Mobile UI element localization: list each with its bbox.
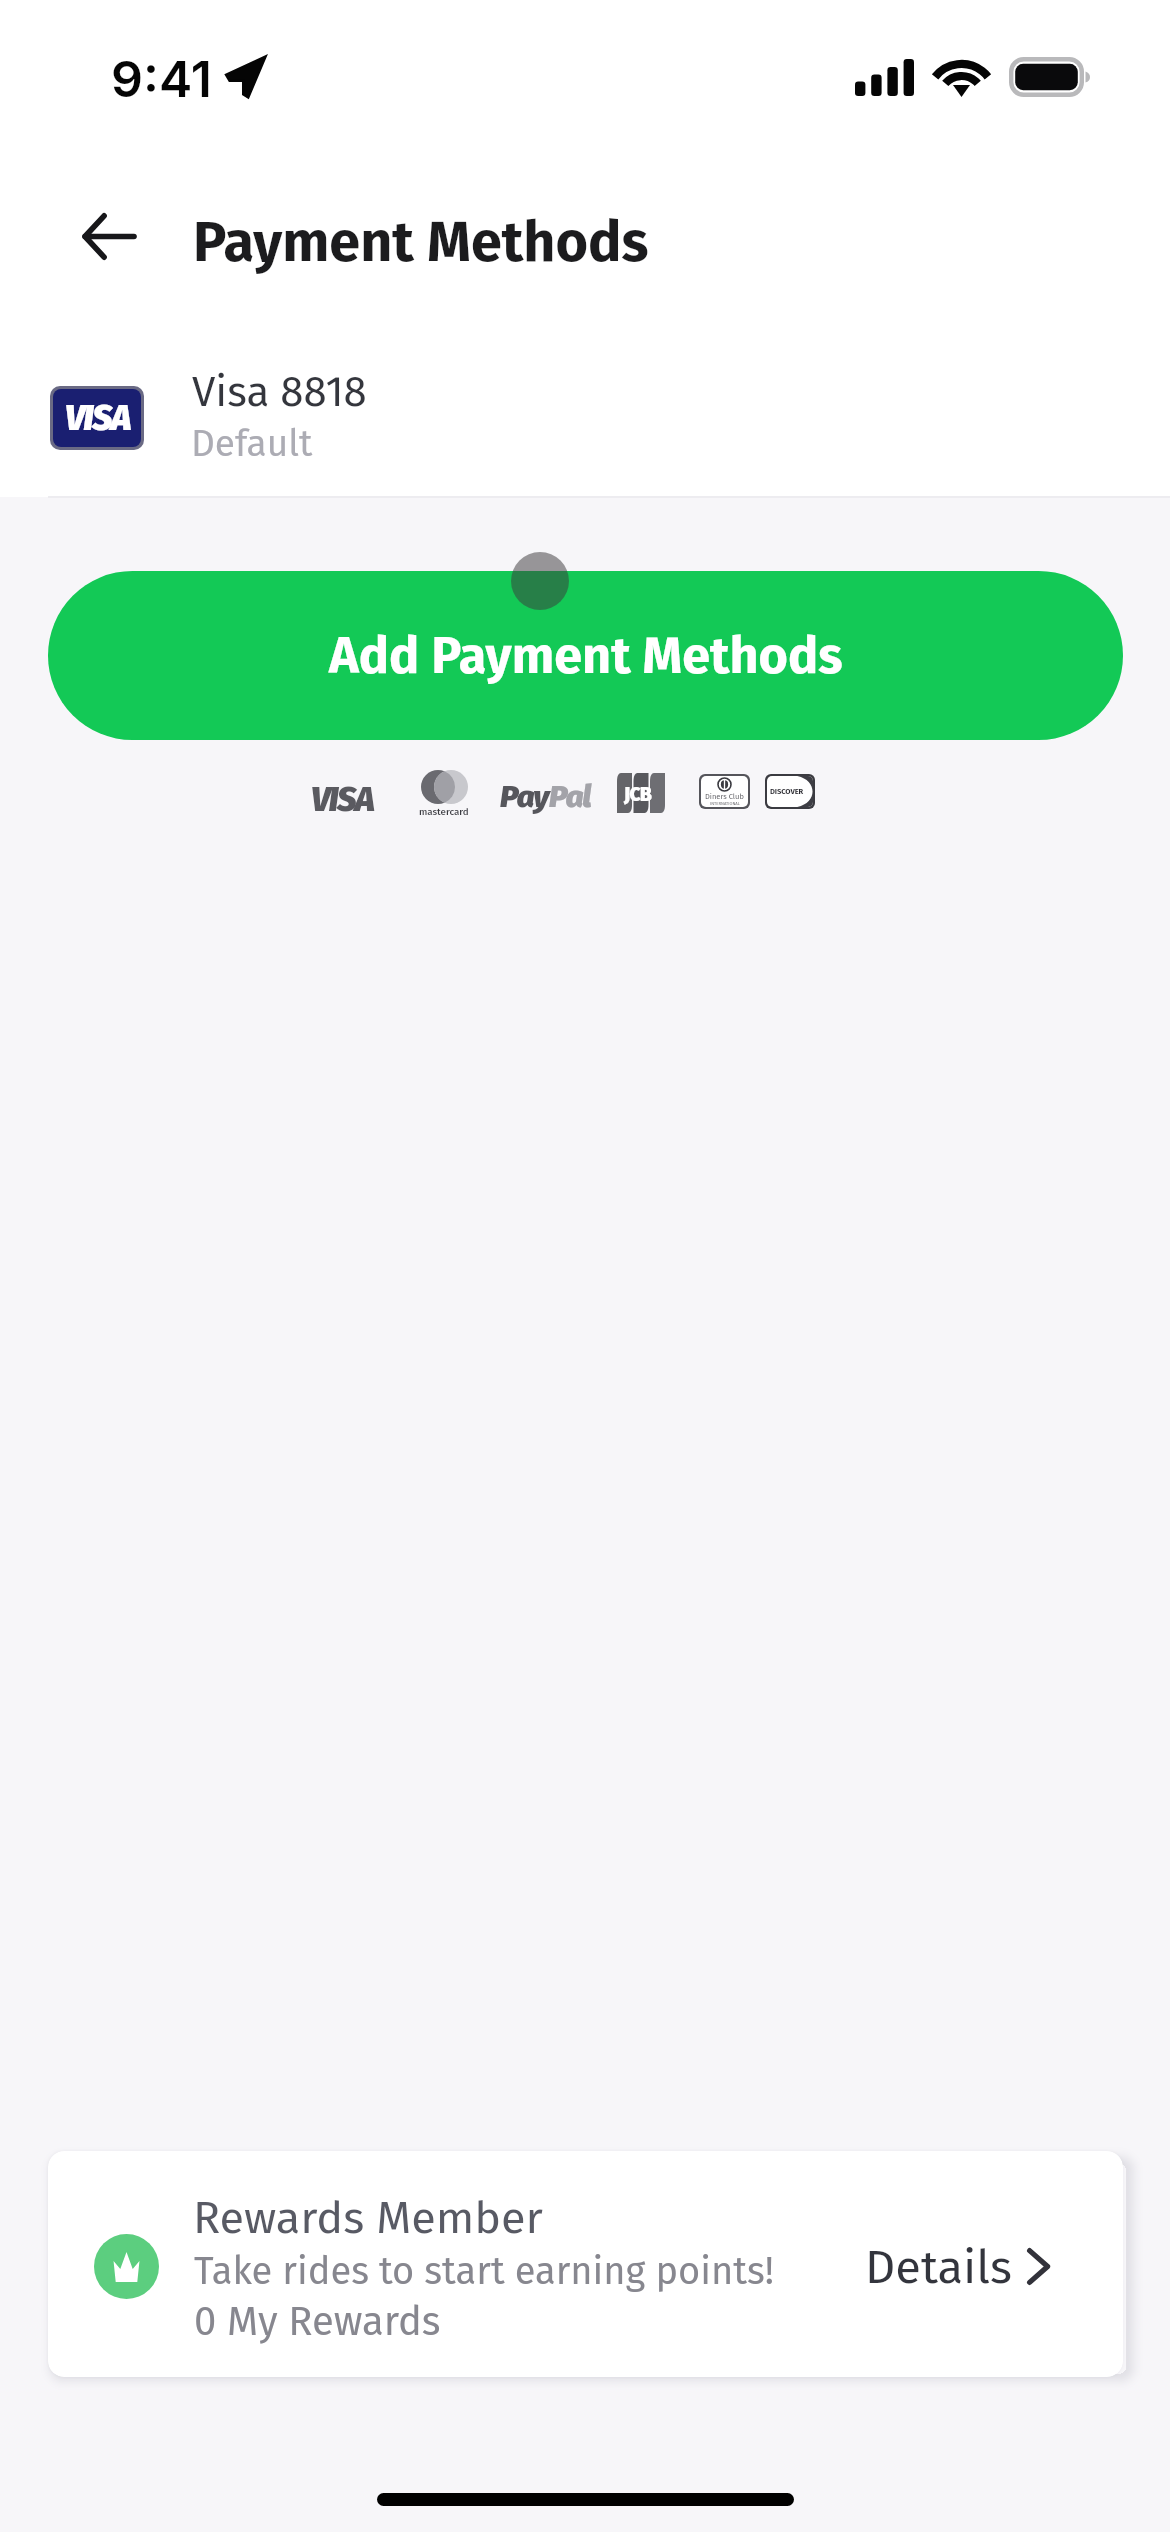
- button[interactable]: Back: [56, 191, 160, 281]
- staticText: Payment Methods: [193, 209, 649, 276]
- staticText: Default: [191, 421, 313, 465]
- staticText: INTERNATIONAL: [710, 801, 740, 806]
- staticText: VISA: [65, 397, 130, 439]
- staticText: VISA: [311, 779, 374, 820]
- staticText: Pal: [549, 778, 591, 815]
- button[interactable]: Add Payment Methods: [48, 571, 1123, 740]
- staticText: 0 My Rewards: [194, 2298, 441, 2346]
- button[interactable]: Rewards Member: [48, 2151, 1123, 2377]
- staticText: DISCOVER: [770, 787, 804, 796]
- staticText: JCB: [624, 783, 652, 806]
- button[interactable]: Details: [854, 2229, 1069, 2301]
- staticText: Take rides to start earning points!: [194, 2248, 774, 2294]
- staticText: Pay: [500, 778, 549, 815]
- staticText: Rewards Member: [193, 2191, 543, 2245]
- staticText: mastercard: [419, 806, 469, 818]
- button[interactable]: VISA: [0, 340, 1170, 496]
- staticText: Details: [865, 2239, 1013, 2295]
- staticText: Visa 8818: [192, 367, 367, 417]
- staticText: 9:41: [111, 49, 212, 109]
- staticText: Diners Club: [705, 792, 744, 801]
- staticText: Add Payment Methods: [329, 626, 843, 686]
